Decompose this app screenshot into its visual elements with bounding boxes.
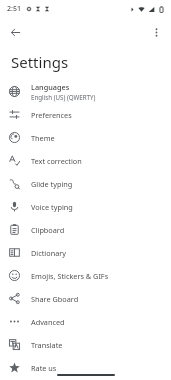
staticText: Rate us bbox=[31, 363, 57, 373]
button[interactable]: Dictionary bbox=[0, 241, 171, 264]
button[interactable]: Voice typing bbox=[0, 195, 171, 218]
staticText: Advanced bbox=[31, 317, 65, 327]
button[interactable]: Theme bbox=[0, 126, 171, 149]
staticText: Languages bbox=[31, 82, 70, 92]
button[interactable]: Back bbox=[4, 21, 26, 43]
staticText: Voice typing bbox=[31, 202, 73, 212]
button[interactable]: Languages bbox=[0, 79, 171, 103]
staticText: Theme bbox=[31, 133, 55, 143]
button[interactable]: More options bbox=[145, 21, 167, 43]
staticText: English (US) (QWERTY) bbox=[31, 93, 96, 101]
staticText: Settings bbox=[11, 52, 69, 72]
button[interactable]: Emojis, Stickers & GIFs bbox=[0, 264, 171, 287]
button[interactable]: Rate us bbox=[0, 356, 171, 379]
staticText: Translate bbox=[31, 340, 63, 350]
button[interactable]: Translate bbox=[0, 333, 171, 356]
staticText: Glide typing bbox=[31, 179, 73, 189]
staticText: Clipboard bbox=[31, 225, 65, 235]
button[interactable]: Share Gboard bbox=[0, 287, 171, 310]
staticText: Dictionary bbox=[31, 248, 66, 258]
button[interactable]: Text correction bbox=[0, 149, 171, 172]
button[interactable]: Preferences bbox=[0, 103, 171, 126]
staticText: Preferences bbox=[31, 110, 72, 120]
staticText: 2:51 bbox=[7, 4, 21, 14]
staticText: Text correction bbox=[31, 156, 82, 166]
staticText: Emojis, Stickers & GIFs bbox=[31, 271, 109, 281]
button[interactable]: Glide typing bbox=[0, 172, 171, 195]
button[interactable]: Clipboard bbox=[0, 218, 171, 241]
button[interactable]: Advanced bbox=[0, 310, 171, 333]
staticText: Share Gboard bbox=[31, 294, 79, 304]
